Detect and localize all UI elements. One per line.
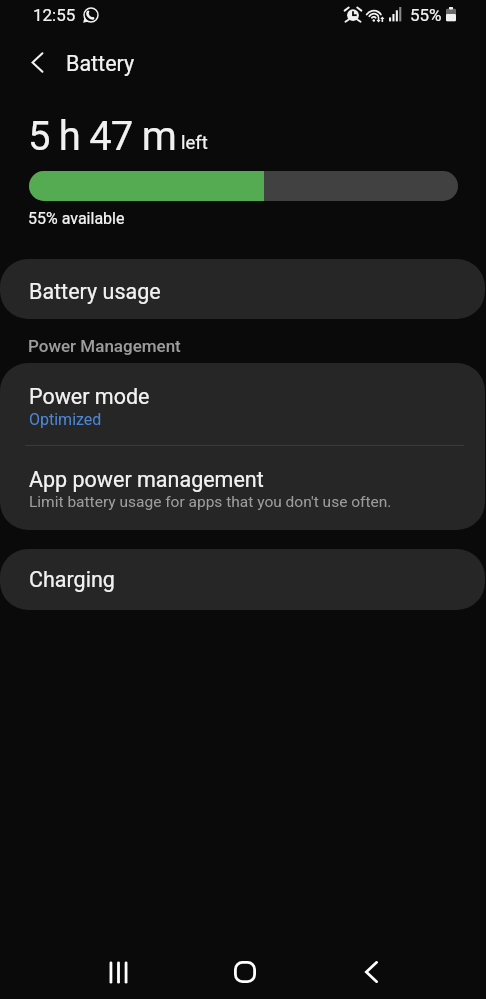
button[interactable]: Power mode: [0, 363, 485, 445]
staticText: Optimized: [29, 410, 102, 429]
staticText: left: [181, 132, 208, 154]
staticText: 5 h 47 m: [28, 113, 176, 160]
staticText: Limit battery usage for apps that you do…: [29, 493, 392, 511]
staticText: 55% available: [28, 209, 125, 228]
button[interactable]: Back: [343, 944, 399, 999]
button[interactable]: Home: [217, 944, 273, 999]
button[interactable]: Recent apps: [90, 944, 146, 999]
button[interactable]: Charging: [0, 549, 485, 610]
staticText: Power mode: [29, 384, 150, 409]
staticText: Charging: [29, 567, 115, 592]
staticText: Battery usage: [29, 279, 161, 304]
staticText: Battery: [66, 51, 135, 76]
button[interactable]: Battery usage: [0, 259, 485, 319]
staticText: App power management: [29, 467, 264, 492]
staticText: 55%: [410, 5, 442, 25]
button[interactable]: App power management: [0, 446, 485, 511]
staticText: 12:55: [33, 5, 76, 25]
staticText: Power Management: [28, 336, 181, 356]
button[interactable]: Navigate up: [16, 41, 58, 83]
